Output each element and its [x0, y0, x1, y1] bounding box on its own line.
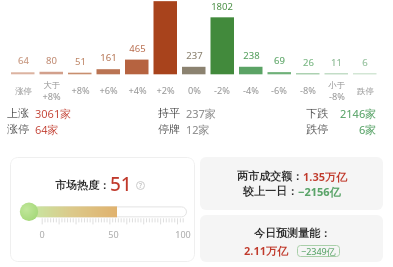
staticText: 6 [362, 56, 368, 69]
button[interactable]: 两市成交额： [200, 157, 383, 210]
button[interactable]: 持平 [158, 104, 216, 122]
staticText: 涨停 [15, 86, 32, 96]
staticText: 0 [39, 228, 45, 240]
staticText: 上涨 [7, 106, 29, 120]
staticText: 465 [129, 42, 146, 55]
staticText: -8% [300, 84, 316, 97]
staticText: 238 [243, 49, 260, 62]
staticText: 大于 [43, 80, 60, 90]
staticText: 161 [100, 51, 117, 64]
staticText: 100 [175, 228, 191, 240]
staticText: 市场热度： [55, 178, 110, 192]
staticText: ? [139, 181, 142, 190]
staticText: 237 [186, 49, 203, 62]
button[interactable]: 涨停 [7, 120, 59, 138]
staticText: 26 [303, 56, 314, 69]
staticText: 小于 [328, 80, 345, 90]
staticText: 0% [188, 84, 201, 97]
staticText: 2.11万亿 [244, 243, 288, 258]
staticText: 较上一日： [243, 184, 298, 198]
staticText: -6% [271, 84, 287, 97]
staticText: 237家 [186, 106, 216, 121]
staticText: −2156亿 [298, 184, 341, 199]
staticText: 50 [108, 228, 119, 240]
staticText: +4% [128, 84, 147, 97]
staticText: +6% [99, 84, 118, 97]
staticText: 64家 [35, 122, 59, 137]
staticText: 11 [331, 56, 342, 69]
staticText: 下跌 [306, 106, 328, 120]
staticText: +8% [71, 84, 90, 97]
staticText: 69 [274, 54, 285, 67]
staticText: +8% [42, 90, 61, 101]
button[interactable]: 今日预测量能： [200, 215, 383, 262]
staticText: 51 [110, 171, 132, 193]
staticText: 3061家 [35, 106, 72, 121]
staticText: 跌停 [357, 86, 374, 96]
staticText: 12家 [186, 122, 210, 137]
button[interactable]: 上涨 [7, 104, 72, 122]
staticText: 64 [18, 54, 29, 67]
staticText: 1802 [211, 0, 233, 13]
button[interactable]: 停牌 [158, 120, 210, 138]
staticText: 51 [75, 55, 86, 68]
staticText: 停牌 [158, 122, 180, 136]
button[interactable] [10, 157, 195, 262]
staticText: 80 [46, 54, 57, 67]
staticText: 持平 [158, 106, 180, 120]
button[interactable]: 跌停 [306, 120, 377, 138]
staticText: 6家 [359, 122, 377, 137]
staticText: -4% [243, 84, 259, 97]
staticText: -8% [329, 90, 345, 101]
staticText: -2% [214, 84, 230, 97]
staticText: 今日预测量能： [254, 226, 331, 240]
staticText: 两市成交额： [237, 169, 303, 183]
button[interactable]: 说明 [136, 181, 145, 190]
staticText: 2146家 [340, 106, 377, 121]
staticText: 涨停 [7, 122, 29, 136]
button[interactable]: 下跌 [306, 104, 377, 122]
staticText: 1.35万亿 [303, 169, 347, 184]
staticText: +2% [156, 84, 175, 97]
staticText: 跌停 [306, 122, 328, 136]
staticText: −2349亿 [301, 245, 336, 257]
